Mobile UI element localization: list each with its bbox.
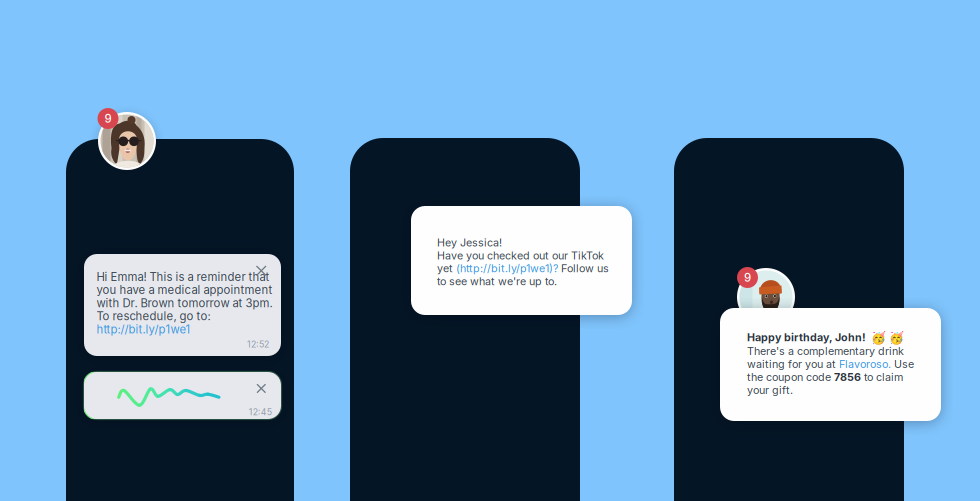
staticText: http://bit.ly/p1we1: [96, 322, 190, 336]
staticText: you have a medical appointment: [96, 283, 272, 297]
staticText: waiting for you at: [747, 357, 839, 370]
button[interactable]: Dismiss: [257, 384, 273, 401]
staticText: 12:52: [247, 339, 269, 350]
staticText: Have you checked out our TikTok: [437, 249, 604, 262]
staticText: 9: [744, 271, 751, 284]
staticText: the coupon code: [747, 370, 834, 383]
staticText: to claim: [861, 370, 903, 383]
staticText: your gift.: [747, 383, 793, 396]
staticText: There's a complementary drink: [747, 345, 904, 358]
button[interactable]: Hey Jessica!: [411, 206, 632, 315]
staticText: 12:45: [249, 407, 272, 417]
staticText: 7856: [834, 370, 861, 383]
staticText: with Dr. Brown tomorrow at 3pm.: [96, 296, 272, 310]
staticText: to see what we're up to.: [437, 275, 557, 288]
staticText: Follow us: [558, 262, 609, 275]
staticText: Use: [891, 357, 914, 370]
button[interactable]: 12:45: [84, 372, 281, 419]
button[interactable]: Dismiss: [256, 266, 274, 283]
staticText: To reschedule, go to:: [96, 309, 210, 323]
staticText: 9: [104, 112, 111, 125]
staticText: Hi Emma! This is a reminder that: [96, 270, 269, 284]
staticText: Flavoroso.: [839, 357, 891, 370]
staticText: yet: [437, 262, 456, 275]
staticText: (http://bit.ly/p1we1)?: [456, 262, 558, 275]
button[interactable]: Happy birthday, John!: [720, 308, 941, 421]
staticText: Hey Jessica!: [437, 236, 502, 249]
staticText: Happy birthday, John!: [747, 331, 866, 344]
button[interactable]: Hi Emma! This is a reminder that: [84, 254, 281, 356]
staticText: 🥳 🥳: [871, 330, 904, 345]
